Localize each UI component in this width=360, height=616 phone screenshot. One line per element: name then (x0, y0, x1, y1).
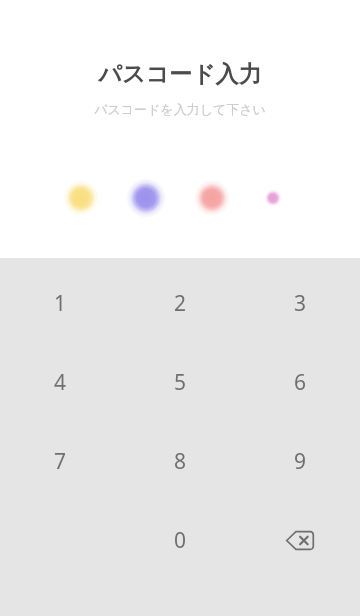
staticText: 7 (54, 447, 67, 476)
staticText: 4 (54, 368, 67, 397)
staticText: 2 (174, 289, 187, 318)
staticText: パスコード入力 (98, 60, 262, 89)
staticText: 8 (174, 447, 187, 476)
staticText: 6 (294, 368, 307, 397)
button[interactable]: 1 (0, 264, 120, 343)
staticText: 9 (294, 447, 307, 476)
staticText: 0 (174, 526, 187, 555)
button[interactable]: 7 (0, 422, 120, 501)
button[interactable]: 4 (0, 343, 120, 422)
staticText: 5 (174, 368, 187, 397)
button[interactable]: 3 (240, 264, 360, 343)
staticText: パスコードを入力して下さい (94, 101, 266, 117)
button[interactable]: 5 (120, 343, 240, 422)
staticText: 3 (294, 289, 307, 318)
button[interactable]: 9 (240, 422, 360, 501)
staticText: 1 (54, 289, 67, 318)
button[interactable]: 2 (120, 264, 240, 343)
button[interactable]: Delete (240, 501, 360, 580)
button[interactable]: 8 (120, 422, 240, 501)
button[interactable]: 6 (240, 343, 360, 422)
button[interactable]: 0 (120, 501, 240, 580)
